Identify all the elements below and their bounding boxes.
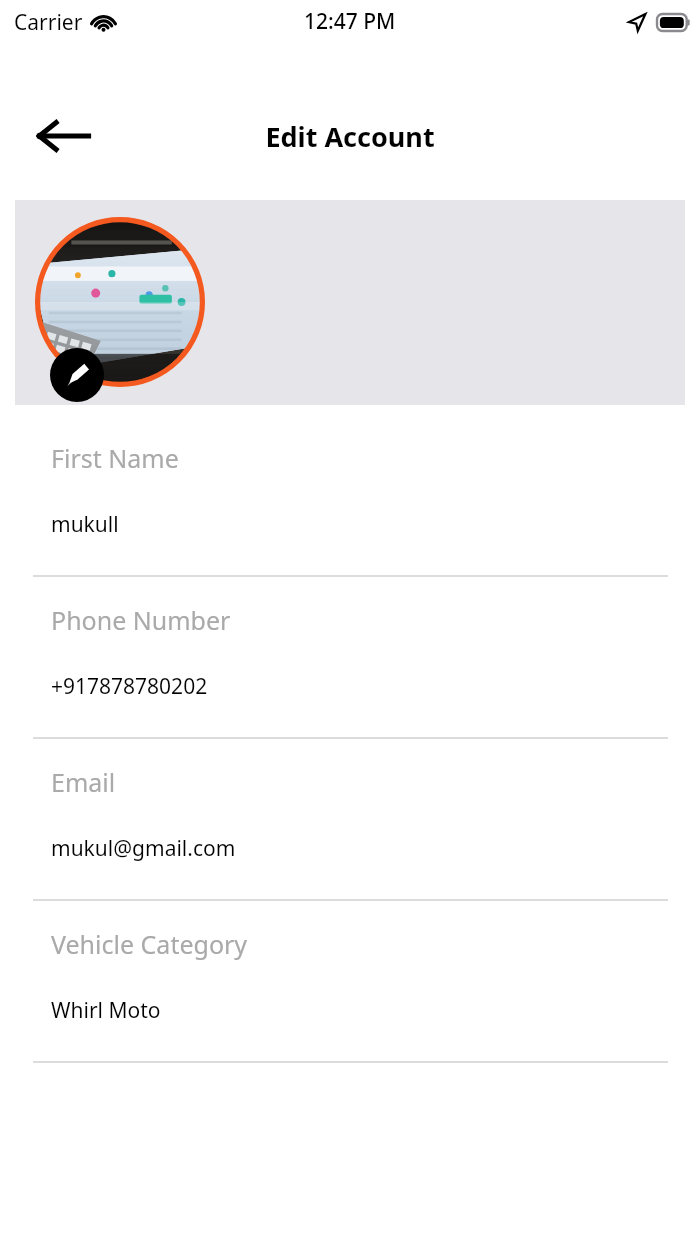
staticText: mukul@gmail.com: [51, 834, 236, 863]
button[interactable]: Change profile photo: [35, 217, 205, 387]
staticText: 12:47 PM: [304, 7, 396, 36]
staticText: Vehicle Category: [51, 927, 248, 961]
staticText: Whirl Moto: [51, 996, 161, 1025]
staticText: Email: [51, 765, 116, 799]
button[interactable]: Phone Number: [0, 577, 700, 739]
staticText: Edit Account: [265, 118, 435, 155]
button[interactable]: Back: [36, 108, 92, 164]
button[interactable]: Edit photo: [50, 348, 104, 402]
staticText: Carrier: [14, 8, 83, 37]
button[interactable]: Vehicle Category: [0, 901, 700, 1063]
staticText: First Name: [51, 441, 179, 475]
button[interactable]: Email: [0, 739, 700, 901]
staticText: +917878780202: [51, 672, 208, 701]
button[interactable]: First Name: [0, 415, 700, 577]
staticText: Phone Number: [51, 603, 231, 637]
staticText: mukull: [51, 510, 119, 539]
